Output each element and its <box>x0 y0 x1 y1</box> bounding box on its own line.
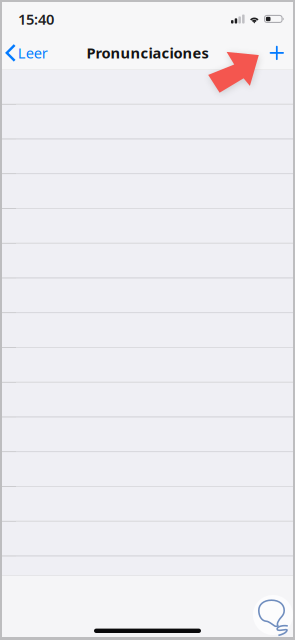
staticText: Leer <box>18 43 48 63</box>
button[interactable]: Help <box>253 595 293 635</box>
staticText: 15:40 <box>18 9 54 29</box>
button[interactable]: Add <box>260 36 293 70</box>
staticText: Pronunciaciones <box>86 43 208 63</box>
button[interactable]: Leer <box>2 36 56 70</box>
